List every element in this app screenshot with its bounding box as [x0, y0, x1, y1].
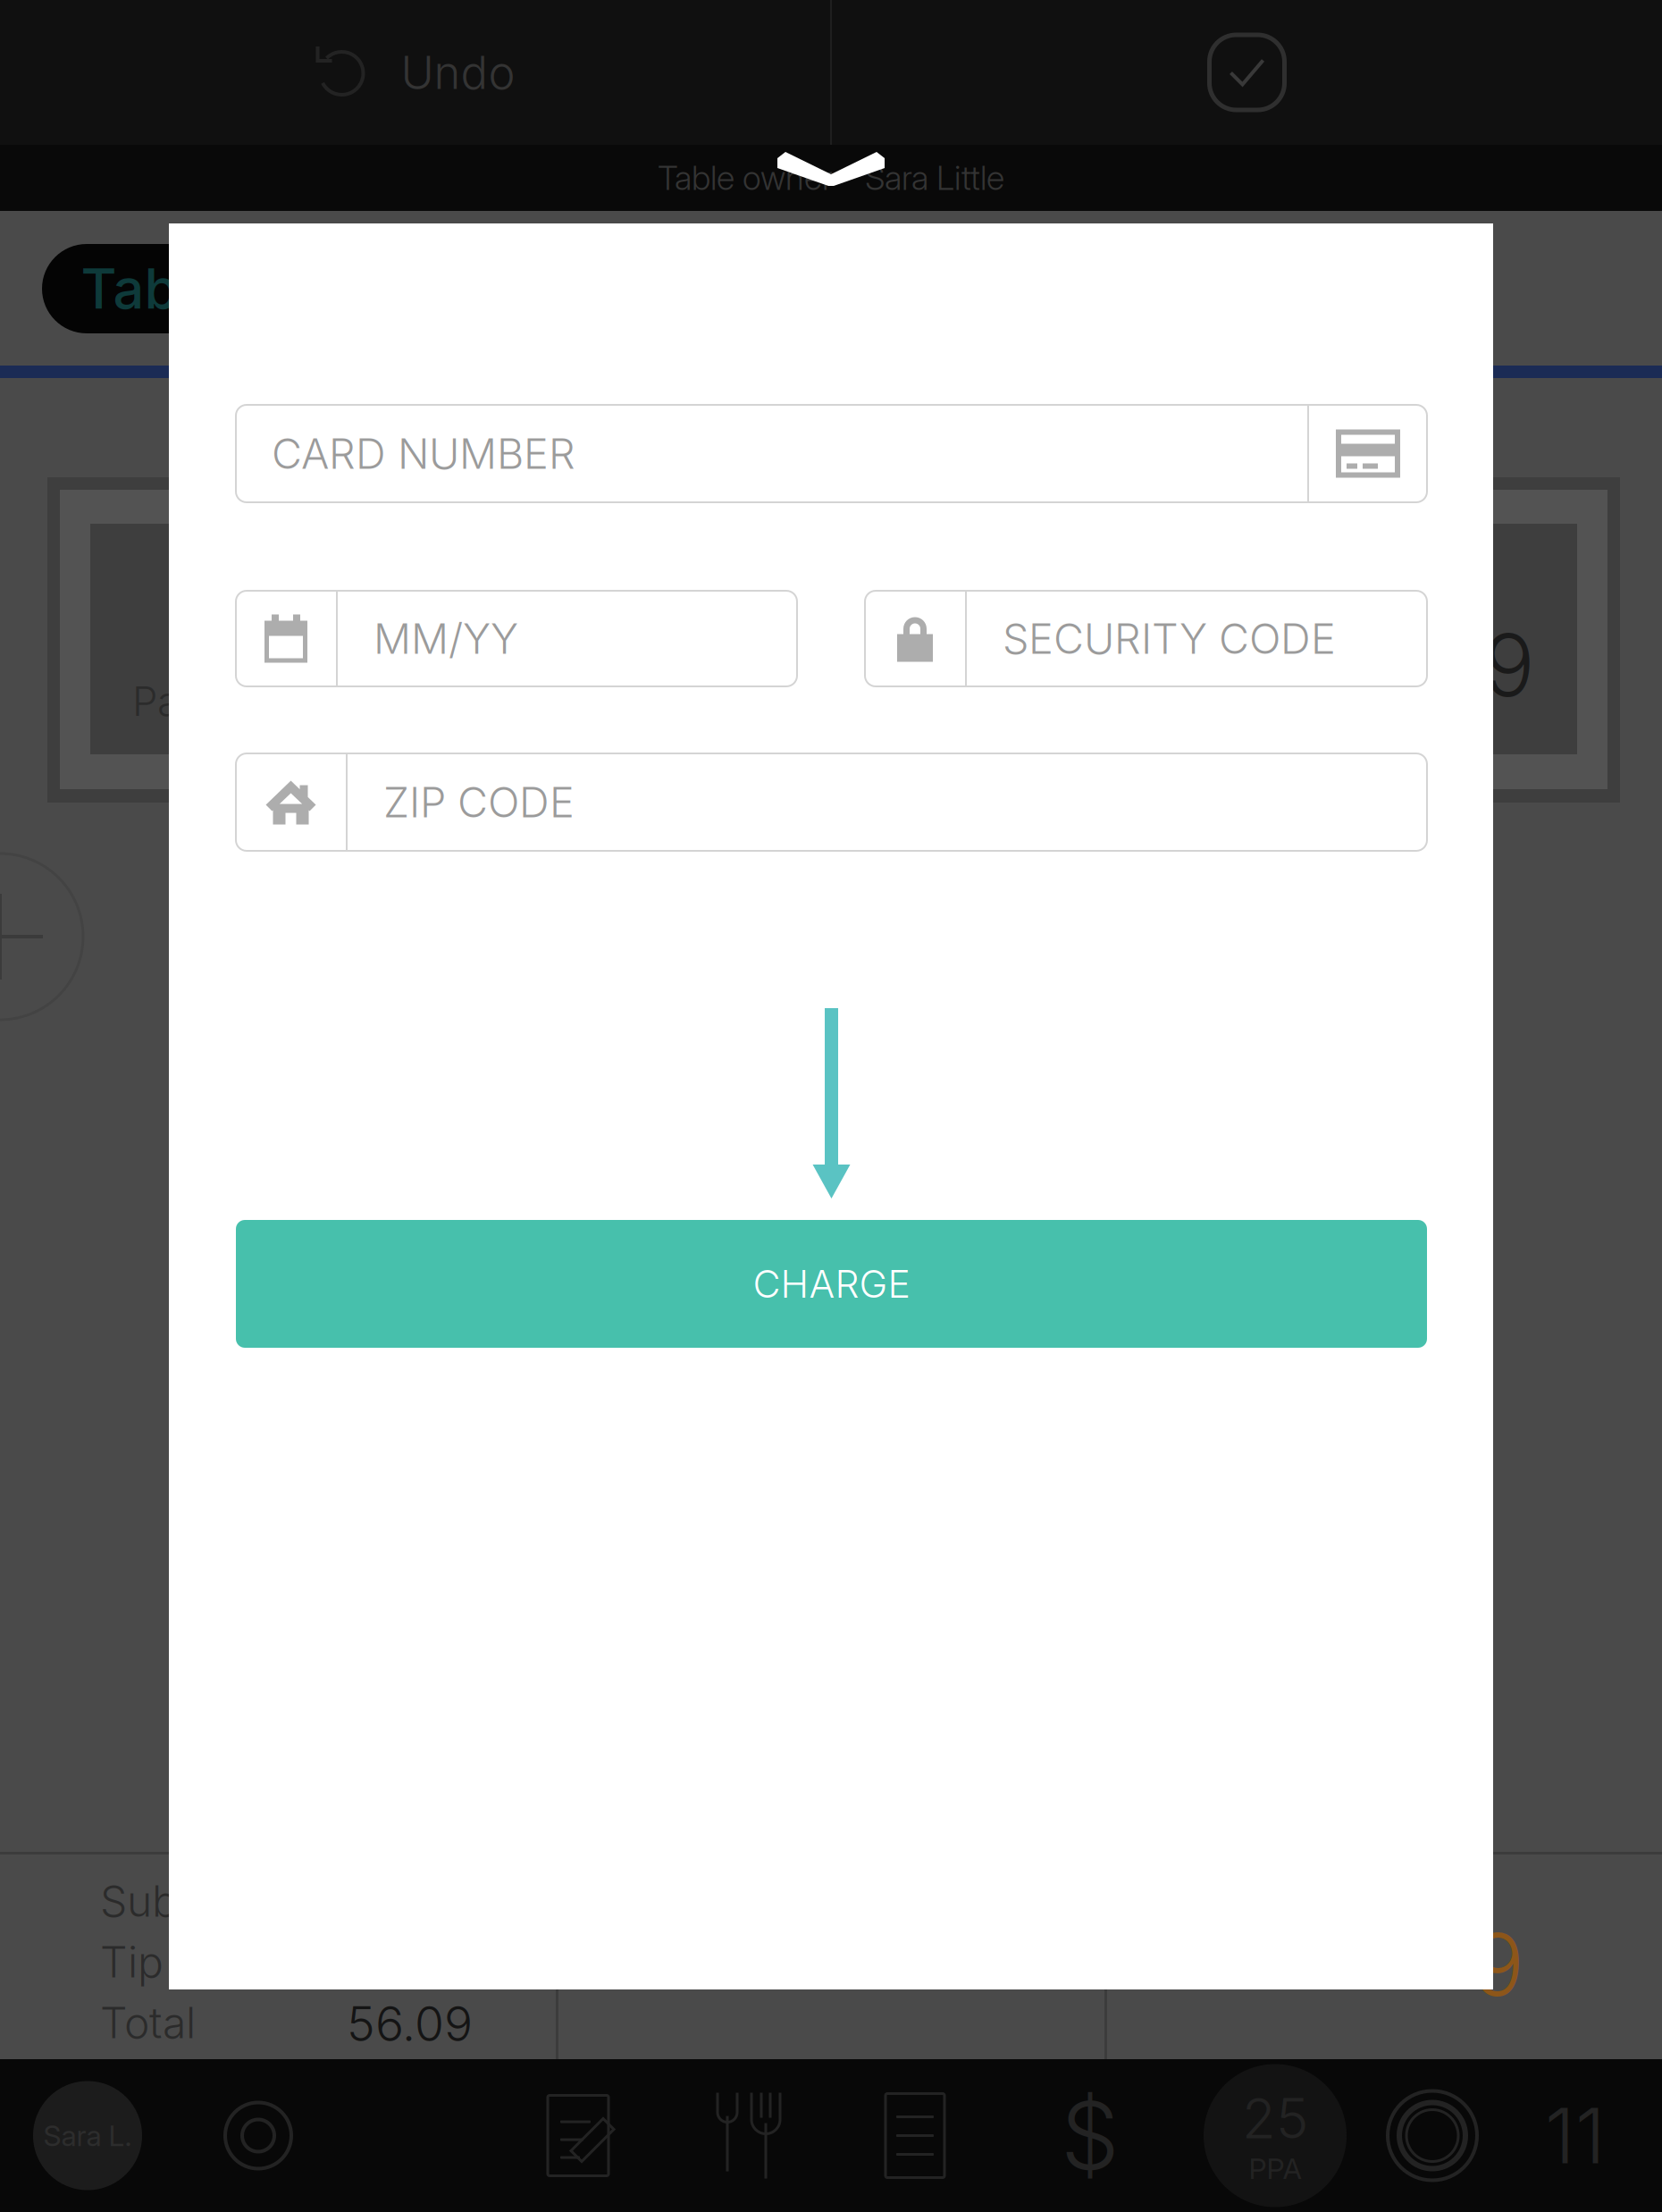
staticText: Sara L. [43, 2118, 132, 2153]
staticText: CARD NUMBER [272, 428, 575, 479]
button[interactable]: Edit order note [502, 2059, 654, 2212]
button[interactable]: Sara L., server [7, 2059, 168, 2212]
button[interactable]: CHARGE [236, 1220, 1427, 1348]
button[interactable]: Menu [674, 2059, 826, 2212]
button[interactable]: Course timer [1361, 2059, 1504, 2212]
staticText: SECURITY CODE [1003, 613, 1336, 664]
staticText: 9 [1473, 1913, 1524, 2016]
staticText: CHARGE [753, 1261, 910, 1307]
button[interactable]: Confirm order [832, 0, 1662, 145]
button[interactable]: Receipt [839, 2059, 991, 2212]
staticText: Undo [401, 45, 515, 100]
staticText: 25 [1242, 2085, 1308, 2151]
staticText: 56.09 [347, 1995, 473, 2052]
button[interactable]: Payments [1023, 2059, 1157, 2212]
staticText: 9 [1483, 613, 1535, 717]
staticText: Table 24 [81, 256, 307, 322]
button[interactable]: 25 per person average [1199, 2059, 1351, 2212]
staticText: Subtotal [100, 1875, 262, 1927]
staticText: Party of 4 [132, 677, 317, 726]
staticText: $ [1061, 2079, 1120, 2192]
staticText: MM/YY [374, 613, 518, 664]
staticText: Tip [100, 1936, 164, 1988]
button[interactable]: Settings [187, 2059, 330, 2212]
staticText: 11 [1545, 2089, 1606, 2182]
button[interactable]: Table 24 [42, 244, 346, 333]
button[interactable]: 11 guests [1508, 2059, 1642, 2212]
button[interactable]: Table owner Sara Little [0, 145, 1662, 211]
staticText: ZIP CODE [383, 777, 575, 827]
staticText: Total [100, 1997, 196, 2049]
staticText: PPA [1249, 2151, 1301, 2186]
staticText: Table owner Sara Little [658, 158, 1004, 198]
button[interactable]: Undo [0, 0, 830, 145]
